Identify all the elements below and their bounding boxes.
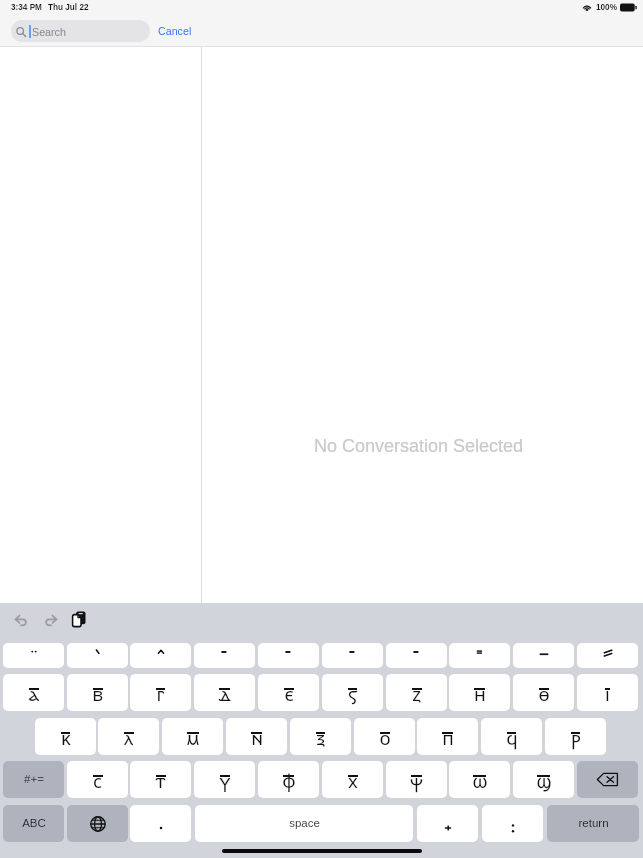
button[interactable]: ⲟ [354, 718, 415, 755]
button[interactable]: ⲝ [290, 718, 351, 755]
staticText: Search [32, 26, 66, 38]
button[interactable]: ⲫ [258, 761, 319, 798]
button[interactable] [513, 643, 574, 668]
button[interactable]: Backspace [577, 761, 638, 798]
button[interactable]: ⲏ [449, 674, 510, 711]
button[interactable]: ⲡ [417, 718, 478, 755]
staticText: ⲫ [282, 768, 296, 793]
button[interactable] [577, 643, 638, 668]
button[interactable] [194, 643, 255, 668]
button[interactable]: ⲣ [545, 718, 606, 755]
staticText: ⲯ [410, 768, 423, 793]
button[interactable]: Cancel [155, 20, 195, 42]
staticText: ⲃ [92, 681, 103, 706]
button[interactable]: Next keyboard [67, 805, 128, 842]
staticText: ⲥ [93, 768, 102, 793]
staticText: ABC [22, 817, 46, 830]
button[interactable]: ⲙ [162, 718, 223, 755]
button[interactable]: ⲃ [67, 674, 128, 711]
staticText: ⲭ [348, 768, 358, 793]
staticText: ⲟ [379, 725, 391, 750]
button[interactable]: Paste [71, 610, 89, 628]
button[interactable]: ⲅ [130, 674, 191, 711]
button[interactable]: #+= [3, 761, 64, 798]
button[interactable]: ABC [3, 805, 64, 842]
button[interactable]: ⲑ [513, 674, 574, 711]
button[interactable]: ⲥ [67, 761, 128, 798]
button[interactable]: ⲁ [3, 674, 64, 711]
staticText: Thu Jul 22 [48, 3, 89, 12]
button[interactable]: ⲕ [35, 718, 96, 755]
button[interactable]: ⲱ [449, 761, 510, 798]
staticText: ⲑ [538, 681, 550, 706]
button[interactable] [3, 643, 64, 668]
button[interactable] [322, 643, 383, 668]
staticText: ⲙ [186, 725, 200, 750]
button[interactable] [258, 643, 319, 668]
staticText: ⲅ [156, 681, 165, 706]
button[interactable] [386, 643, 447, 668]
button[interactable]: ⲩ [194, 761, 255, 798]
staticText: ϣ [536, 768, 552, 793]
button[interactable]: ϥ [481, 718, 542, 755]
staticText: return [578, 817, 609, 830]
staticText: ⲝ [316, 725, 325, 750]
staticText: ⲧ [155, 768, 166, 793]
staticText: ⲡ [442, 725, 454, 750]
staticText: ⲛ [251, 725, 263, 750]
staticText: 3:34 PM [11, 3, 42, 12]
staticText: space [289, 817, 320, 830]
button[interactable]: ⲛ [226, 718, 287, 755]
staticText: ⲁ [28, 681, 39, 706]
staticText: ⲕ [61, 725, 71, 750]
button[interactable]: space [195, 805, 413, 842]
button[interactable]: ⲉ [258, 674, 319, 711]
button[interactable]: ⲗ [98, 718, 159, 755]
staticText: ⲓ [605, 681, 610, 706]
staticText: ⲏ [474, 681, 486, 706]
button[interactable] [449, 643, 510, 668]
staticText: 100% [596, 3, 617, 12]
button[interactable]: ⲇ [194, 674, 255, 711]
button[interactable] [130, 643, 191, 668]
staticText: #+= [24, 773, 44, 786]
staticText: ⲉ [284, 681, 294, 706]
button[interactable]: ⲭ [322, 761, 383, 798]
staticText: No Conversation Selected [314, 436, 524, 456]
staticText: ⲱ [472, 768, 488, 793]
staticText: ⲗ [124, 725, 133, 750]
button[interactable]: Period [130, 805, 191, 842]
staticText: ⲣ [571, 725, 581, 750]
staticText: ⲇ [218, 681, 231, 706]
button[interactable]: ⲯ [386, 761, 447, 798]
button[interactable]: ⲋ [322, 674, 383, 711]
staticText: ⲩ [220, 768, 230, 793]
button[interactable]: ⲍ [386, 674, 447, 711]
staticText: ⲋ [348, 681, 357, 706]
button[interactable]: ⲧ [130, 761, 191, 798]
button[interactable]: Search [11, 20, 150, 42]
button[interactable]: Redo [39, 611, 60, 632]
button[interactable]: Coptic mark [417, 805, 478, 842]
button[interactable] [67, 643, 128, 668]
staticText: ϥ [506, 725, 518, 750]
button[interactable]: Undo [12, 611, 33, 632]
button[interactable]: ϣ [513, 761, 574, 798]
staticText: Cancel [158, 25, 192, 37]
button[interactable]: ⲓ [577, 674, 638, 711]
staticText: ⲍ [412, 681, 421, 706]
button[interactable]: return [547, 805, 639, 842]
button[interactable]: Colon [482, 805, 543, 842]
